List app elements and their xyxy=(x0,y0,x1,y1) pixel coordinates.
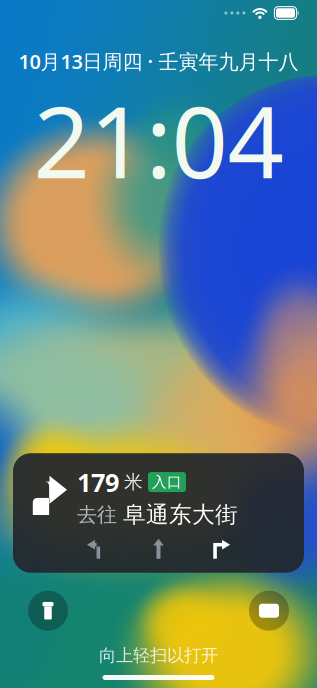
staticText: 179 xyxy=(77,465,119,499)
staticText: 入口 xyxy=(152,473,182,491)
staticText: 10月13日周四 · 壬寅年九月十八 xyxy=(18,48,298,75)
button[interactable]: Flashlight xyxy=(28,591,68,631)
staticText: 去往 xyxy=(77,502,117,527)
button[interactable]: Camera xyxy=(249,591,289,631)
staticText: 向上轻扫以打开 xyxy=(99,645,218,666)
staticText: 米 xyxy=(124,471,143,493)
staticText: 阜通东大街 xyxy=(123,501,238,529)
staticText: 21:04 xyxy=(33,75,283,206)
